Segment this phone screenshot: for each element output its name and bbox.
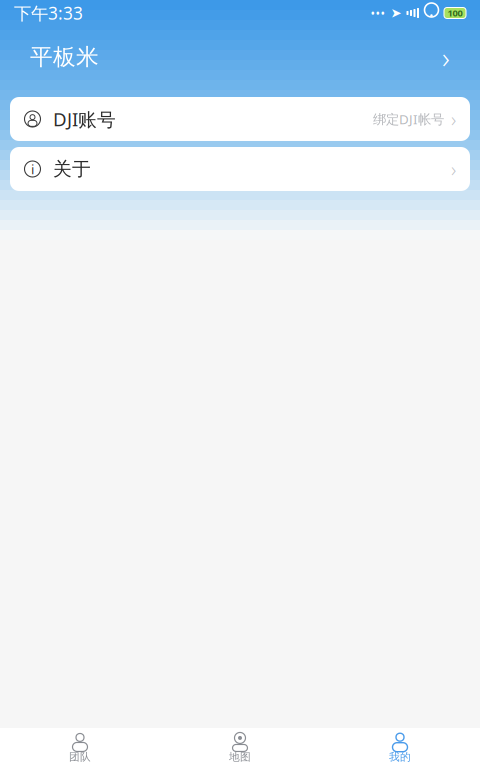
staticText: 下午3:33 (14, 1, 83, 24)
staticText: i (31, 160, 34, 178)
staticText: 地图 (229, 750, 251, 763)
staticText: 团队 (69, 750, 91, 763)
staticText: › (442, 37, 450, 76)
staticText: DJI账号 (53, 107, 116, 131)
button[interactable]: 地图 (160, 728, 320, 768)
button[interactable]: 平板米 (0, 26, 480, 88)
staticText: ••• (370, 5, 385, 21)
staticText: › (451, 106, 456, 132)
staticText: 关于 (53, 157, 91, 180)
staticText: ➤ (390, 5, 401, 20)
staticText: 我的 (389, 750, 411, 763)
staticText: 绑定DJI帐号 (373, 110, 444, 128)
staticText: 100 (447, 7, 462, 19)
button[interactable]: 我的 (320, 728, 480, 768)
staticText: 平板米 (30, 43, 99, 71)
button[interactable]: 团队 (0, 728, 160, 768)
button[interactable]: DJI账号 (10, 97, 470, 141)
staticText: › (451, 156, 456, 182)
button[interactable]: i (10, 147, 470, 191)
